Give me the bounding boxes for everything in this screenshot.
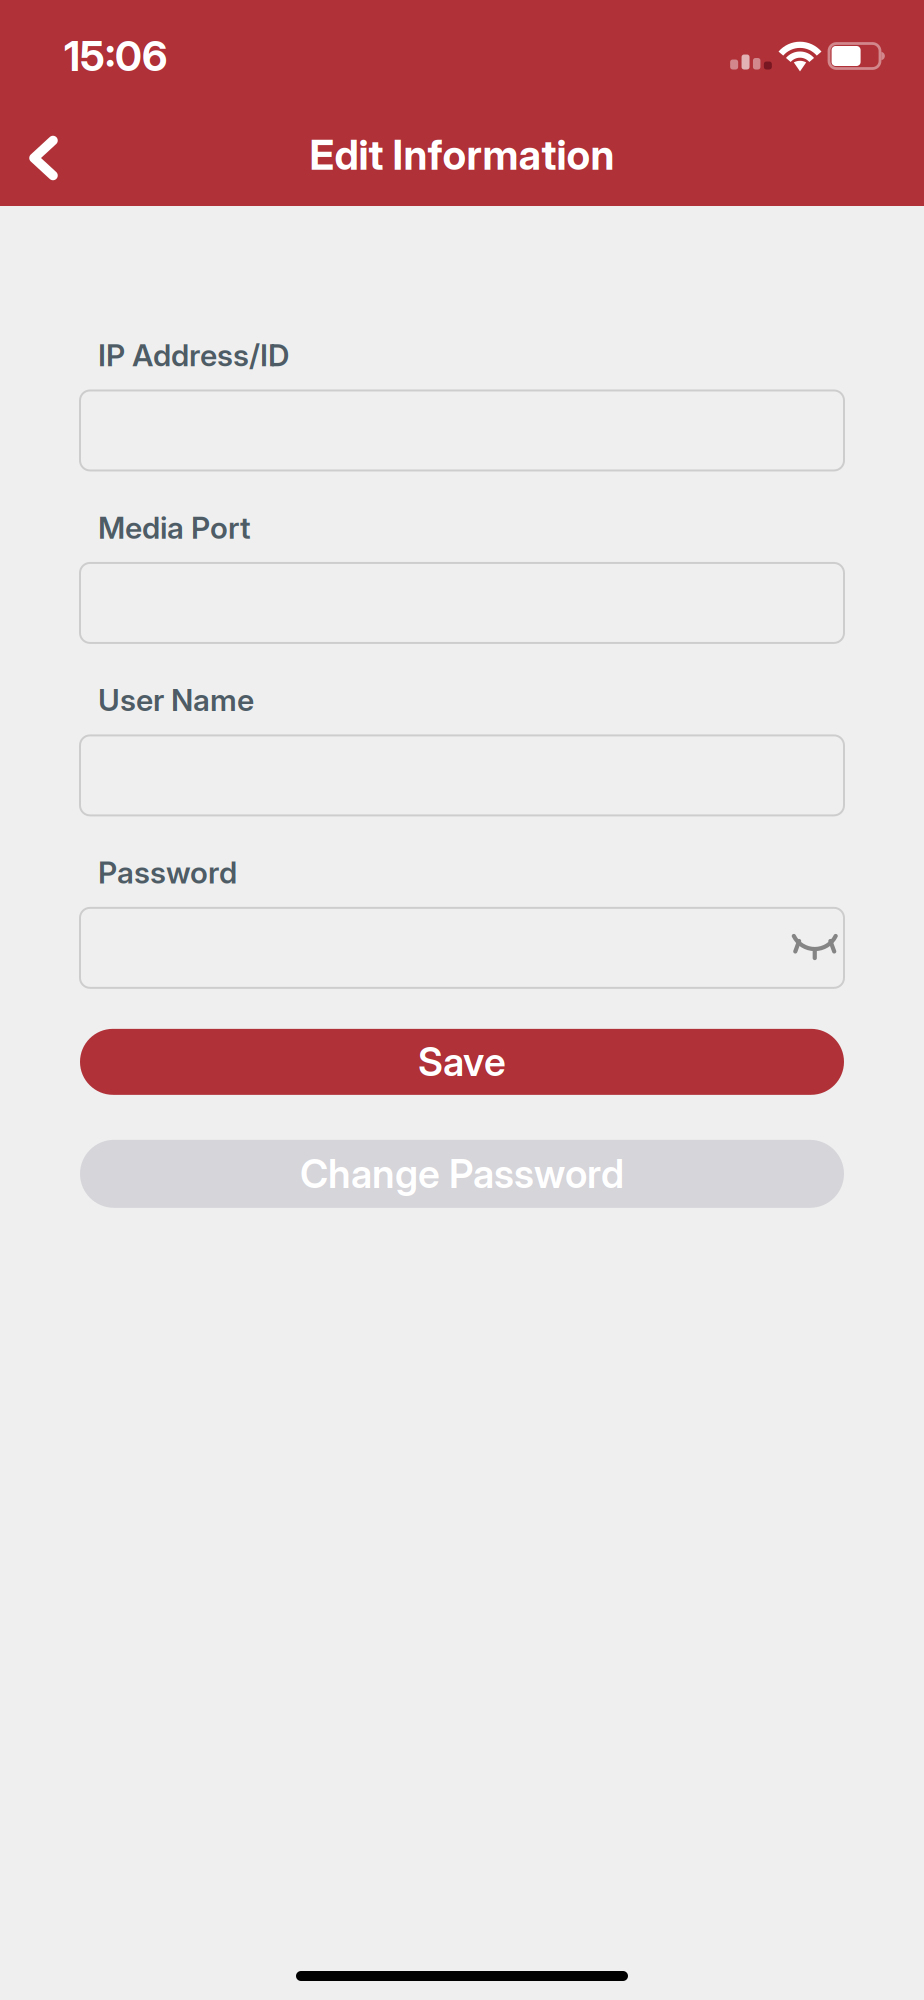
staticText: 15:06	[64, 31, 167, 81]
staticText: Password	[98, 854, 237, 891]
staticText: User Name	[98, 682, 254, 718]
staticText: Media Port	[98, 509, 251, 546]
button[interactable]: IP Address/ID	[80, 390, 844, 470]
button[interactable]: Password	[80, 908, 844, 988]
staticText: Change Password	[300, 1150, 624, 1197]
staticText: Save	[418, 1038, 506, 1085]
button[interactable]: Show password	[786, 909, 844, 987]
button[interactable]: Change Password	[80, 1140, 844, 1208]
button[interactable]: Back	[0, 114, 88, 202]
button[interactable]: Media Port	[80, 563, 844, 643]
staticText: Edit Information	[309, 130, 614, 179]
button[interactable]: User Name	[80, 735, 844, 815]
staticText: IP Address/ID	[98, 337, 289, 373]
button[interactable]: Save	[80, 1029, 844, 1095]
